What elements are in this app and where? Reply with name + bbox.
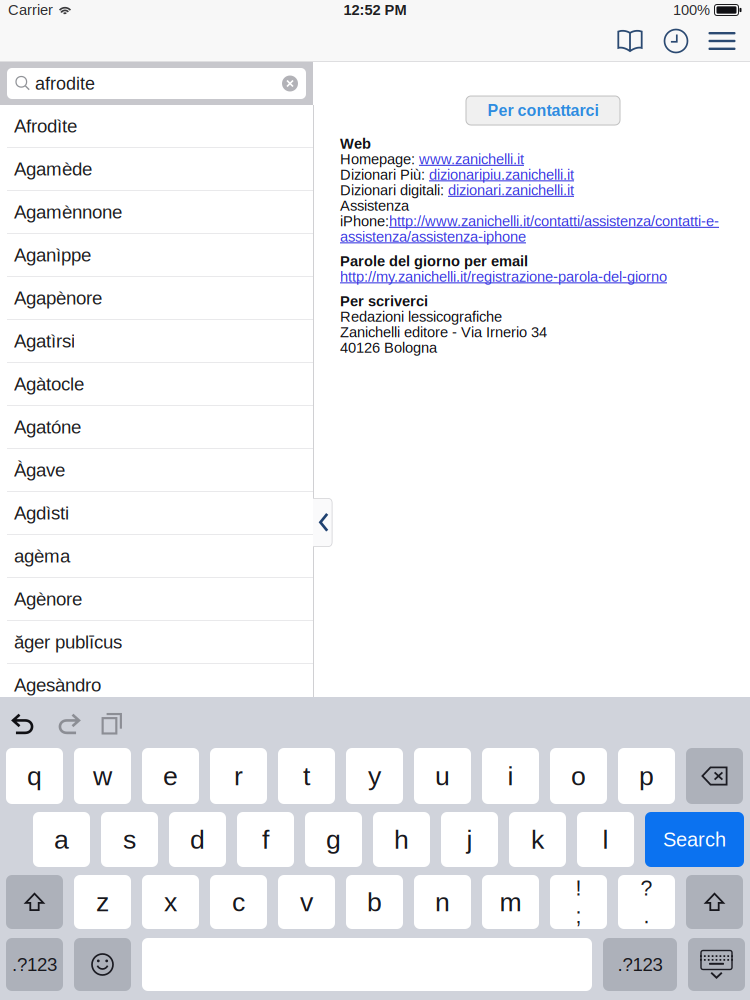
staticText: dizionaripiu.zanichelli.it [429, 167, 574, 183]
staticText: Agamènnone [14, 202, 122, 223]
button[interactable]: Emoji [74, 938, 131, 991]
button[interactable]: s [101, 812, 158, 867]
staticText: b [367, 887, 382, 917]
staticText: w [93, 761, 112, 791]
button[interactable]: e [142, 748, 199, 804]
button[interactable]: r [210, 748, 267, 804]
button[interactable]: Hide keyboard [688, 938, 745, 991]
staticText: Homepage: [340, 151, 419, 167]
button[interactable]: Agatìrsi [0, 320, 313, 363]
button[interactable]: Agesàndro [0, 664, 313, 707]
button[interactable]: ? [618, 875, 675, 929]
staticText: ăger publīcus [14, 632, 122, 653]
button[interactable]: Undo [2, 709, 46, 739]
button[interactable]: Aganìppe [0, 234, 313, 277]
staticText: Search [663, 828, 726, 851]
staticText: 100% [673, 2, 710, 18]
button[interactable]: History [653, 20, 699, 62]
button[interactable]: Agapènore [0, 277, 313, 320]
staticText: k [531, 825, 544, 854]
staticText: g [326, 825, 341, 854]
button[interactable]: z [74, 875, 131, 929]
button[interactable]: Shift [686, 875, 743, 929]
button[interactable]: Numbers and symbols [603, 938, 677, 991]
button[interactable]: Numbers and symbols [6, 938, 63, 991]
button[interactable]: y [346, 748, 403, 804]
staticText: h [394, 825, 409, 854]
staticText: assistenza/assistenza-iphone [340, 229, 526, 245]
staticText: iPhone: [340, 213, 389, 229]
staticText: Dizionari Più: [340, 167, 429, 183]
button[interactable]: o [550, 748, 607, 804]
button[interactable]: f [237, 812, 294, 867]
button[interactable]: k [509, 812, 566, 867]
button[interactable]: a [33, 812, 90, 867]
staticText: y [368, 761, 381, 791]
button[interactable]: d [169, 812, 226, 867]
button[interactable]: Àgave [0, 449, 313, 492]
button[interactable]: j [441, 812, 498, 867]
button[interactable]: ! [550, 875, 607, 929]
button[interactable]: Agàtocle [0, 363, 313, 406]
staticText: Àgave [14, 460, 65, 481]
staticText: Web [340, 136, 371, 152]
staticText: dizionari.zanichelli.it [448, 182, 574, 198]
staticText: p [639, 761, 654, 791]
button[interactable]: Afrodìte [0, 105, 313, 148]
button[interactable]: m [482, 875, 539, 929]
staticText: Parole del giorno per email [340, 253, 528, 269]
button[interactable]: Agamède [0, 148, 313, 191]
button[interactable]: Agamènnone [0, 191, 313, 234]
staticText: Agapènore [14, 288, 102, 309]
staticText: 12:52 PM [343, 2, 406, 18]
button[interactable]: Per contattarci [466, 96, 620, 125]
button[interactable]: b [346, 875, 403, 929]
button[interactable]: q [6, 748, 63, 804]
staticText: http://my.zanichelli.it/registrazione-pa… [340, 269, 667, 285]
button[interactable]: Agènore [0, 578, 313, 621]
button[interactable]: Menu [699, 20, 745, 62]
button[interactable]: p [618, 748, 675, 804]
staticText: Agènore [14, 589, 82, 610]
button[interactable]: u [414, 748, 471, 804]
button[interactable]: i [482, 748, 539, 804]
staticText: Afrodìte [14, 116, 77, 137]
button[interactable]: n [414, 875, 471, 929]
staticText: Agàtocle [14, 374, 84, 395]
staticText: e [163, 761, 178, 791]
button[interactable]: w [74, 748, 131, 804]
staticText: Per scriverci [340, 293, 428, 309]
staticText: l [602, 825, 608, 854]
staticText: q [27, 761, 42, 791]
staticText: a [54, 825, 69, 854]
staticText: ; [575, 904, 581, 928]
button[interactable]: Search [645, 812, 744, 867]
button[interactable]: t [278, 748, 335, 804]
button[interactable]: Shift [6, 875, 63, 929]
staticText: http://www.zanichelli.it/contatti/assist… [389, 213, 719, 229]
button[interactable]: l [577, 812, 634, 867]
button[interactable]: ăger publīcus [0, 621, 313, 664]
button[interactable]: c [210, 875, 267, 929]
button[interactable]: agèma [0, 535, 313, 578]
button[interactable]: v [278, 875, 335, 929]
staticText: c [232, 887, 245, 917]
button[interactable]: Agatóne [0, 406, 313, 449]
staticText: agèma [14, 546, 70, 567]
button[interactable]: Collapse sidebar [313, 498, 333, 547]
button[interactable]: Redo [46, 709, 90, 739]
button[interactable]: h [373, 812, 430, 867]
staticText: n [435, 887, 450, 917]
button[interactable]: Library [607, 20, 653, 62]
staticText: afrodite [35, 73, 95, 93]
button[interactable]: Agdìsti [0, 492, 313, 535]
staticText: Carrier [8, 2, 53, 18]
staticText: Agamède [14, 159, 92, 180]
staticText: . [643, 904, 649, 928]
button[interactable]: Delete [686, 748, 743, 804]
button[interactable]: x [142, 875, 199, 929]
button[interactable]: Paste [90, 709, 134, 739]
staticText: f [262, 825, 269, 854]
button[interactable]: g [305, 812, 362, 867]
